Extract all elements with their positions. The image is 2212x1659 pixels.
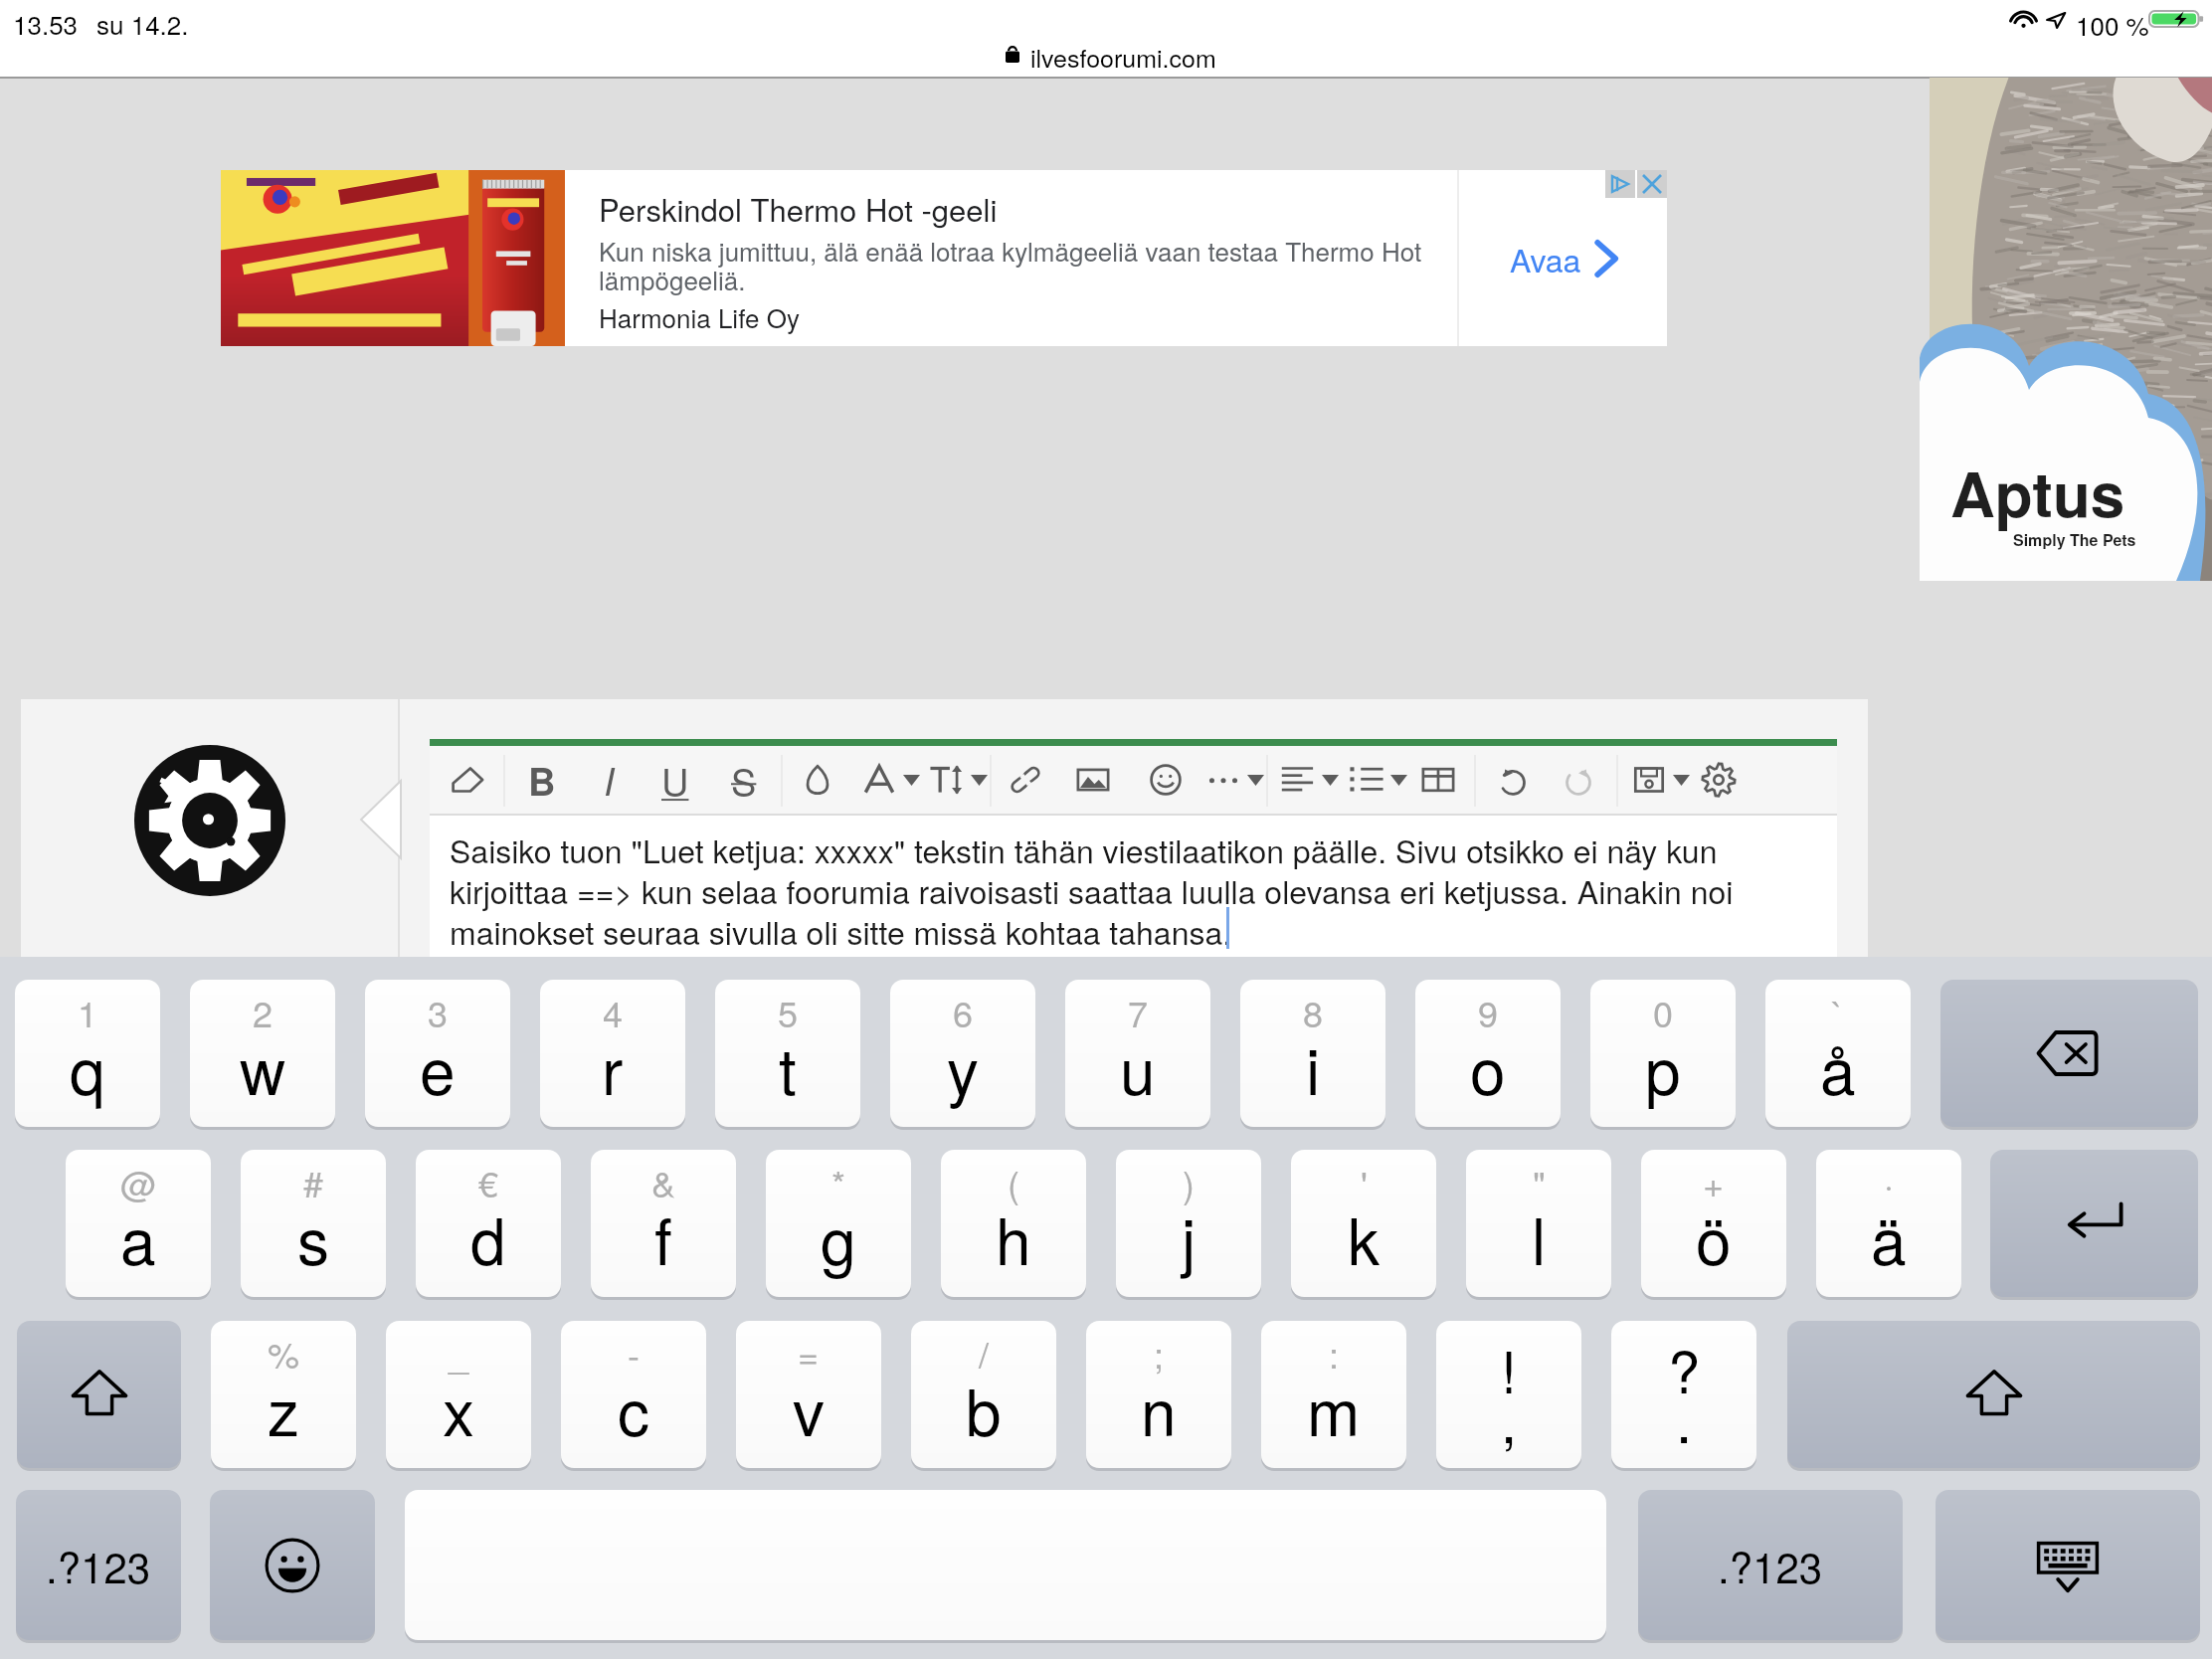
staticText: !	[1501, 1327, 1518, 1409]
staticText: ?	[1668, 1327, 1701, 1409]
staticText: y	[947, 1022, 979, 1114]
button[interactable]: k	[1291, 1150, 1436, 1297]
button[interactable]: s	[241, 1150, 386, 1297]
button[interactable]: z	[211, 1321, 356, 1468]
staticText: su 14.2.	[96, 5, 189, 42]
button[interactable]: a	[66, 1150, 211, 1297]
staticText: ilvesfoorumi.com	[1030, 39, 1216, 75]
button[interactable]: p	[1590, 980, 1736, 1127]
button[interactable]: Right shift	[1787, 1321, 2200, 1468]
button[interactable]: n	[1086, 1321, 1231, 1468]
button[interactable]: save	[1631, 746, 1691, 814]
button[interactable]: link	[1008, 746, 1043, 814]
staticText: g	[821, 1193, 856, 1284]
button[interactable]: !,	[1436, 1321, 1581, 1468]
button[interactable]: Avaa	[1459, 170, 1667, 346]
staticText: 9	[1478, 987, 1499, 1038]
staticText: +	[1703, 1157, 1725, 1208]
button[interactable]: x	[386, 1321, 531, 1468]
button[interactable]: Aptus Simply The Pets advertisement	[1930, 78, 2212, 581]
button[interactable]: c	[561, 1321, 706, 1468]
button[interactable]: y	[890, 980, 1035, 1127]
staticText: *	[831, 1157, 846, 1208]
button[interactable]: S	[711, 746, 777, 814]
staticText: Saisiko tuon "Luet ketjua: xxxxx" teksti…	[450, 827, 1829, 954]
button[interactable]: image	[1075, 746, 1111, 814]
button[interactable]: h	[941, 1150, 1086, 1297]
button[interactable]: å	[1765, 980, 1911, 1127]
button[interactable]: U	[643, 746, 708, 814]
button[interactable]: User avatar	[134, 745, 285, 896]
button[interactable]: undo	[1495, 746, 1531, 814]
button[interactable]: gear	[1701, 746, 1737, 814]
staticText: :	[1329, 1328, 1340, 1380]
button[interactable]: ö	[1641, 1150, 1786, 1297]
button[interactable]: ?.	[1611, 1321, 1756, 1468]
staticText: ,	[1501, 1377, 1518, 1459]
staticText: )	[1183, 1157, 1195, 1208]
staticText: k	[1348, 1193, 1380, 1284]
button[interactable]: i	[1240, 980, 1385, 1127]
button[interactable]: eraser	[450, 746, 485, 814]
staticText: h	[996, 1193, 1031, 1284]
button[interactable]: dots	[1205, 746, 1265, 814]
button[interactable]: table	[1420, 746, 1456, 814]
staticText: .?123	[46, 1536, 151, 1595]
button[interactable]: d	[416, 1150, 561, 1297]
button[interactable]: redo	[1561, 746, 1596, 814]
button[interactable]: Close ad	[1637, 170, 1667, 198]
button[interactable]: w	[190, 980, 335, 1127]
staticText: s	[297, 1193, 329, 1284]
button[interactable]: ä	[1816, 1150, 1961, 1297]
button[interactable]: fontA	[861, 746, 921, 814]
button[interactable]: Ad choices	[1605, 170, 1635, 198]
staticText: f	[654, 1193, 672, 1284]
button[interactable]: Perskindol Thermo Hot -geeli advertiseme…	[221, 170, 1667, 346]
button[interactable]: Hide keyboard	[1935, 1490, 2200, 1640]
staticText: x	[443, 1364, 474, 1455]
staticText: €	[478, 1157, 499, 1208]
button[interactable]: Backspace	[1940, 980, 2198, 1127]
button[interactable]: I	[576, 746, 642, 814]
staticText: j	[1182, 1193, 1197, 1284]
button[interactable]: r	[540, 980, 685, 1127]
button[interactable]: f	[591, 1150, 736, 1297]
button[interactable]: Return	[1990, 1150, 2198, 1297]
staticText: n	[1141, 1364, 1177, 1455]
button[interactable]: .?123	[1638, 1490, 1903, 1640]
staticText: r	[602, 1022, 624, 1114]
button[interactable]: smiley	[1148, 746, 1184, 814]
staticText: Kun niska jumittuu, älä enää lotraa kylm…	[599, 232, 1424, 298]
staticText: U	[661, 753, 689, 807]
button[interactable]: Emoji	[210, 1490, 375, 1640]
button[interactable]: g	[766, 1150, 911, 1297]
button[interactable]: align	[1280, 746, 1340, 814]
button[interactable]: B	[509, 746, 575, 814]
staticText: i	[1306, 1022, 1321, 1114]
button[interactable]: m	[1261, 1321, 1406, 1468]
button[interactable]: e	[365, 980, 510, 1127]
staticText: B	[528, 753, 556, 807]
button[interactable]: fontSize	[929, 746, 989, 814]
staticText: 100 %	[2076, 6, 2149, 43]
staticText: q	[70, 1022, 105, 1114]
staticText: o	[1470, 1022, 1506, 1114]
staticText: ö	[1696, 1193, 1732, 1284]
button[interactable]: v	[736, 1321, 881, 1468]
button[interactable]: j	[1116, 1150, 1261, 1297]
button[interactable]: l	[1466, 1150, 1611, 1297]
button[interactable]: o	[1415, 980, 1561, 1127]
button[interactable]: list	[1349, 746, 1408, 814]
staticText: l	[1532, 1193, 1547, 1284]
button[interactable]: u	[1065, 980, 1210, 1127]
button[interactable]: droplet	[800, 746, 835, 814]
staticText: _	[449, 1328, 469, 1380]
button[interactable]: t	[715, 980, 860, 1127]
button[interactable]: .?123	[16, 1490, 181, 1640]
staticText: (	[1008, 1157, 1019, 1208]
button[interactable]: q	[15, 980, 160, 1127]
button[interactable]: b	[911, 1321, 1056, 1468]
staticText: .	[1676, 1377, 1693, 1459]
button[interactable]: Left shift	[17, 1321, 181, 1468]
